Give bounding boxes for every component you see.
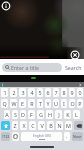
button[interactable]: F [28, 110, 35, 119]
button[interactable]: 1 [1, 88, 8, 97]
button[interactable]: Y [45, 99, 51, 108]
staticText: Z [13, 122, 17, 129]
staticText: P [78, 100, 82, 107]
button[interactable]: I [61, 99, 67, 108]
button[interactable]: Emoji [12, 132, 19, 141]
button[interactable]: Search [62, 59, 84, 75]
button[interactable]: ?123 [1, 132, 10, 141]
staticText: 3 [21, 89, 25, 96]
button[interactable]: 6 [45, 88, 51, 97]
button[interactable]: . [64, 132, 70, 141]
button[interactable]: E [19, 99, 26, 108]
button[interactable]: C [29, 121, 36, 130]
staticText: 5 [38, 89, 42, 96]
staticText: O [70, 100, 75, 107]
button[interactable]: Space [21, 132, 62, 141]
button[interactable]: A [4, 110, 10, 119]
staticText: Q [2, 100, 7, 107]
staticText: 7 [54, 89, 58, 96]
button[interactable]: G [37, 110, 44, 119]
button[interactable]: X [20, 121, 27, 130]
staticText: X [22, 122, 26, 129]
staticText: B [49, 122, 53, 129]
button[interactable]: N [56, 121, 63, 130]
staticText: Enter a title [11, 64, 39, 71]
staticText: Search [65, 64, 82, 71]
button[interactable]: W [10, 99, 17, 108]
staticText: English (US) [33, 134, 51, 138]
staticText: D [21, 111, 25, 118]
staticText: 0 [78, 89, 82, 96]
button[interactable]: D [20, 110, 26, 119]
button[interactable]: M [65, 121, 72, 130]
staticText: W [11, 100, 17, 107]
staticText: 4 [30, 89, 34, 96]
button[interactable]: P [77, 99, 83, 108]
staticText: S [14, 111, 17, 118]
button[interactable]: More suggestions [78, 83, 82, 87]
staticText: K [66, 111, 70, 118]
button[interactable]: S [12, 110, 18, 119]
button[interactable]: O [69, 99, 75, 108]
button[interactable]: Q [1, 99, 8, 108]
button[interactable]: Shift [1, 121, 10, 130]
staticText: Y [46, 100, 50, 107]
staticText: ?123 [2, 134, 10, 139]
button[interactable]: Next [72, 132, 83, 141]
button[interactable]: B [47, 121, 54, 130]
button[interactable]: K [64, 110, 71, 119]
button[interactable]: H [46, 110, 53, 119]
staticText: E [21, 100, 24, 107]
button[interactable]: T [37, 99, 43, 108]
staticText: V [40, 122, 44, 129]
button[interactable]: Backspace [74, 121, 83, 130]
staticText: Next [73, 134, 82, 139]
button[interactable]: 0 [77, 88, 83, 97]
staticText: M [66, 122, 71, 129]
button[interactable]: R [28, 99, 35, 108]
button[interactable]: 2 [10, 88, 17, 97]
button[interactable]: 8 [61, 88, 67, 97]
staticText: N [57, 122, 62, 129]
staticText: L [75, 111, 78, 118]
staticText: H [48, 111, 52, 118]
staticText: G [39, 111, 43, 118]
button[interactable]: L [73, 110, 80, 119]
button[interactable]: 5 [37, 88, 43, 97]
button[interactable]: 9 [69, 88, 75, 97]
staticText: 8 [62, 89, 66, 96]
button[interactable]: Close [70, 50, 80, 60]
staticText: C [31, 122, 35, 129]
button[interactable]: Information [1, 1, 11, 11]
button[interactable]: U [53, 99, 59, 108]
button[interactable]: 7 [53, 88, 59, 97]
staticText: F [30, 111, 33, 118]
button[interactable]: Z [12, 121, 18, 130]
staticText: R [30, 100, 34, 107]
staticText: 2 [12, 89, 16, 96]
button[interactable]: V [38, 121, 45, 130]
button[interactable]: J [55, 110, 62, 119]
button[interactable]: Enter a title [2, 63, 62, 72]
staticText: J [58, 111, 60, 118]
button[interactable]: 4 [28, 88, 35, 97]
staticText: U [54, 100, 58, 107]
staticText: 9 [70, 89, 74, 96]
staticText: . [66, 133, 68, 140]
staticText: T [39, 100, 42, 107]
button[interactable]: 3 [19, 88, 26, 97]
staticText: I [63, 100, 65, 107]
staticText: 1 [3, 89, 7, 96]
staticText: A [5, 111, 9, 118]
staticText: 6 [46, 89, 50, 96]
